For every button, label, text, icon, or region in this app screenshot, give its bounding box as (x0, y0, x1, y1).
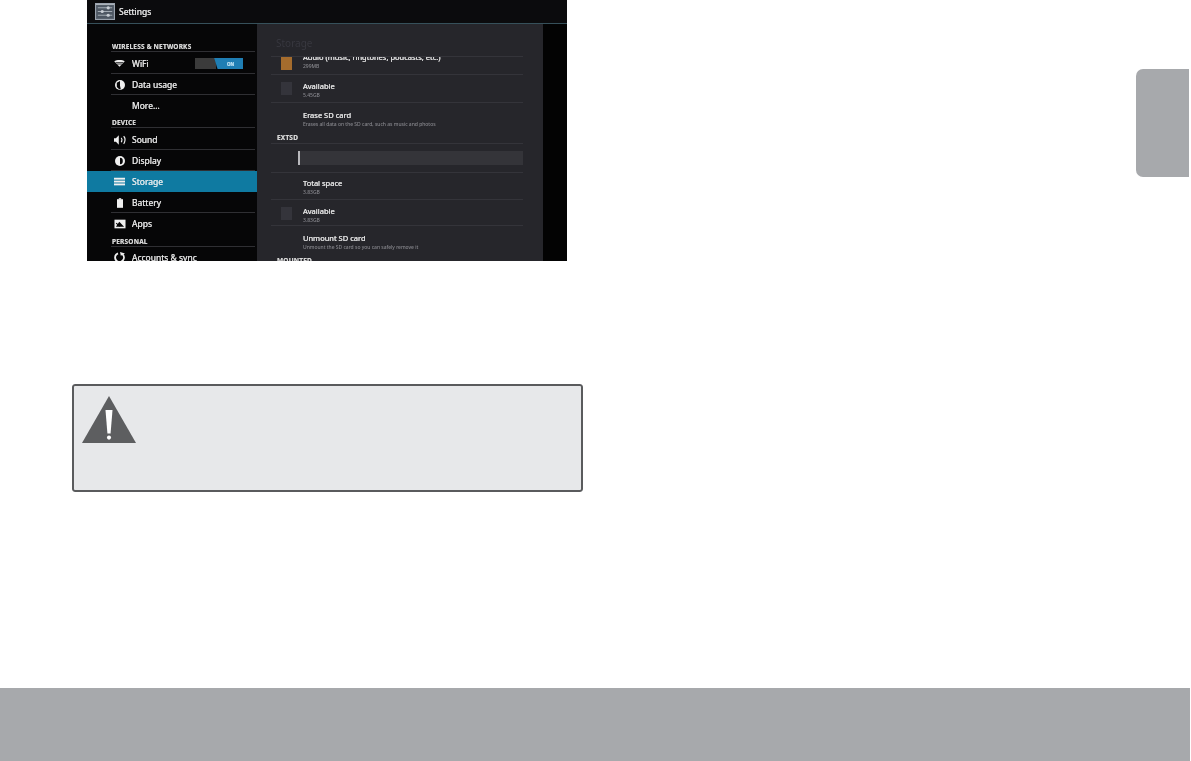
button[interactable] (257, 173, 543, 199)
staticText: More… (132, 100, 160, 112)
button[interactable] (257, 228, 543, 254)
staticText: 5.45GB (303, 92, 320, 99)
button[interactable]: WiFi (87, 53, 257, 74)
staticText: DEVICE (112, 118, 137, 127)
staticText: 3.83GB (303, 189, 320, 196)
button[interactable]: Display (87, 150, 257, 171)
button[interactable] (257, 105, 543, 131)
staticText: Settings (119, 6, 152, 18)
button[interactable]: Storage usage bar (298, 151, 523, 165)
staticText: Sound (132, 134, 158, 146)
staticText: 299MB (303, 63, 320, 70)
staticText: Data usage (132, 79, 178, 91)
staticText: EXTSD (277, 133, 299, 142)
staticText: WiFi (132, 58, 149, 70)
button[interactable]: Accounts & sync (87, 247, 257, 261)
staticText: Available (303, 81, 335, 91)
button[interactable]: Storage (87, 171, 257, 192)
other: Warning (82, 396, 136, 443)
staticText: Available (303, 206, 335, 216)
staticText: Display (132, 155, 161, 167)
button[interactable]: More… (87, 95, 257, 116)
staticText: Unmount SD card (303, 233, 366, 243)
staticText: 3.83GB (303, 217, 320, 224)
button[interactable] (257, 201, 543, 227)
staticText: PERSONAL (112, 237, 148, 246)
staticText: WIRELESS & NETWORKS (112, 42, 192, 51)
button[interactable]: Sound (87, 129, 257, 150)
staticText: Total space (303, 178, 343, 188)
staticText: Accounts & sync (132, 252, 197, 261)
button[interactable]: Settings app icon (87, 0, 567, 23)
staticText: Apps (132, 218, 152, 230)
button[interactable]: Apps (87, 213, 257, 234)
staticText: Audio (music, ringtones, podcasts, etc.) (303, 56, 441, 62)
staticText: MOUNTED (277, 256, 313, 261)
staticText: Battery (132, 197, 162, 209)
button[interactable]: Data usage (87, 74, 257, 95)
button[interactable]: Settings app icon (95, 3, 115, 20)
button[interactable] (257, 56, 543, 73)
staticText: Storage (132, 176, 164, 188)
staticText: Erase SD card (303, 110, 352, 120)
staticText: Unmount the SD card so you can safely re… (303, 244, 419, 251)
button[interactable] (257, 76, 543, 102)
staticText: Storage (276, 36, 313, 50)
button[interactable]: Battery (87, 192, 257, 213)
staticText: ON (227, 61, 235, 67)
staticText: Erases all data on the SD card, such as … (303, 121, 436, 128)
button[interactable]: WiFi on (195, 58, 243, 69)
